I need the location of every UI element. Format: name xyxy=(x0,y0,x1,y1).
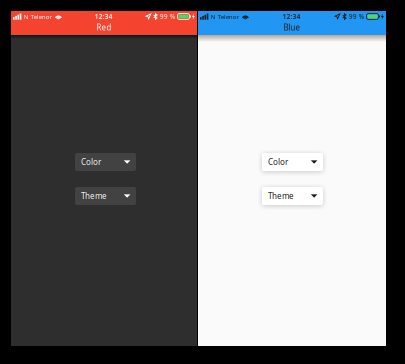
staticText: Red xyxy=(96,22,111,33)
button[interactable]: Color xyxy=(262,153,323,171)
staticText: Theme xyxy=(268,191,294,201)
staticText: 99 % xyxy=(349,12,365,21)
staticText: N Telenor xyxy=(211,12,240,21)
button[interactable]: Theme xyxy=(262,187,323,205)
button[interactable]: Color xyxy=(75,153,136,171)
staticText: 12:34 xyxy=(283,12,301,21)
staticText: Blue xyxy=(283,22,300,33)
button[interactable]: Theme xyxy=(75,187,136,205)
staticText: 12:34 xyxy=(95,12,113,21)
staticText: 99 % xyxy=(160,12,176,21)
staticText: Theme xyxy=(81,191,107,201)
staticText: Color xyxy=(268,157,288,167)
staticText: N Telenor xyxy=(24,12,53,21)
staticText: Color xyxy=(81,157,101,167)
